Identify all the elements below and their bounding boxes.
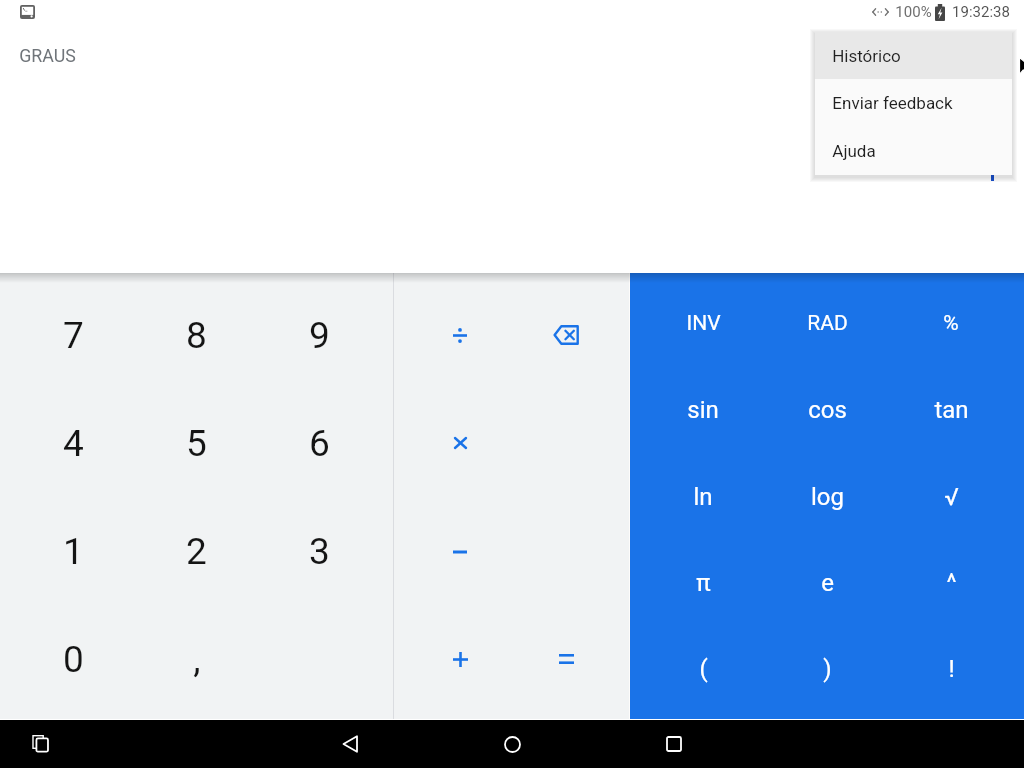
- button[interactable]: tan: [889, 367, 1013, 453]
- button[interactable]: Backspace: [507, 281, 625, 389]
- staticText: √: [944, 483, 959, 511]
- button[interactable]: Recent apps: [20, 723, 60, 763]
- staticText: !: [948, 655, 955, 683]
- staticText: 3: [309, 530, 330, 573]
- staticText: ^: [946, 569, 957, 597]
- button[interactable]: [401, 281, 519, 389]
- staticText: (: [699, 655, 708, 683]
- staticText: e: [821, 569, 834, 597]
- button[interactable]: √: [889, 454, 1013, 540]
- button[interactable]: 2: [135, 497, 258, 605]
- button[interactable]: INV: [641, 280, 765, 366]
- button[interactable]: ): [765, 626, 889, 712]
- staticText: ln: [693, 483, 713, 511]
- staticText: sin: [687, 396, 719, 424]
- button[interactable]: cos: [765, 367, 889, 453]
- staticText: π: [696, 569, 711, 597]
- button[interactable]: ln: [641, 454, 765, 540]
- staticText: RAD: [807, 311, 848, 336]
- button[interactable]: 9: [258, 281, 381, 389]
- staticText: 5: [186, 422, 207, 465]
- staticText: 1: [63, 530, 84, 573]
- button[interactable]: (: [641, 626, 765, 712]
- staticText: 0: [63, 638, 84, 681]
- button[interactable]: Overview: [654, 724, 694, 764]
- button[interactable]: 0: [12, 605, 135, 713]
- staticText: 19:32:38: [952, 3, 1010, 21]
- staticText: GRAUS: [19, 45, 76, 66]
- button[interactable]: Histórico: [815, 32, 1012, 79]
- staticText: INV: [686, 311, 721, 336]
- button[interactable]: 3: [258, 497, 381, 605]
- button[interactable]: Back: [330, 724, 370, 764]
- staticText: 9: [309, 314, 330, 357]
- button[interactable]: %: [889, 280, 1013, 366]
- button[interactable]: 1: [12, 497, 135, 605]
- button[interactable]: 7: [12, 281, 135, 389]
- button[interactable]: [401, 605, 519, 713]
- staticText: 6: [309, 422, 330, 465]
- staticText: Enviar feedback: [832, 93, 953, 113]
- staticText: 100%: [895, 3, 932, 21]
- button[interactable]: Enviar feedback: [815, 79, 1012, 127]
- button[interactable]: π: [641, 540, 765, 626]
- staticText: log: [811, 483, 844, 511]
- button[interactable]: [401, 497, 519, 605]
- button[interactable]: !: [889, 626, 1013, 712]
- staticText: tan: [934, 396, 969, 424]
- button[interactable]: Ajuda: [815, 127, 1012, 175]
- staticText: 2: [186, 530, 207, 573]
- button[interactable]: RAD: [765, 280, 889, 366]
- button[interactable]: 6: [258, 389, 381, 497]
- button[interactable]: log: [765, 454, 889, 540]
- button[interactable]: sin: [641, 367, 765, 453]
- button[interactable]: 5: [135, 389, 258, 497]
- button[interactable]: 8: [135, 281, 258, 389]
- button[interactable]: Home: [492, 724, 532, 764]
- staticText: Histórico: [832, 46, 901, 66]
- staticText: cos: [808, 396, 847, 424]
- staticText: %: [943, 311, 959, 336]
- button[interactable]: e: [765, 540, 889, 626]
- button[interactable]: [401, 389, 519, 497]
- button[interactable]: ,: [135, 605, 258, 713]
- staticText: ): [823, 655, 832, 683]
- button[interactable]: 4: [12, 389, 135, 497]
- staticText: Ajuda: [832, 141, 876, 161]
- staticText: 7: [63, 314, 84, 357]
- staticText: 4: [63, 422, 84, 465]
- button[interactable]: [507, 605, 625, 713]
- staticText: ,: [193, 638, 201, 681]
- button[interactable]: ^: [889, 540, 1013, 626]
- staticText: 8: [186, 314, 207, 357]
